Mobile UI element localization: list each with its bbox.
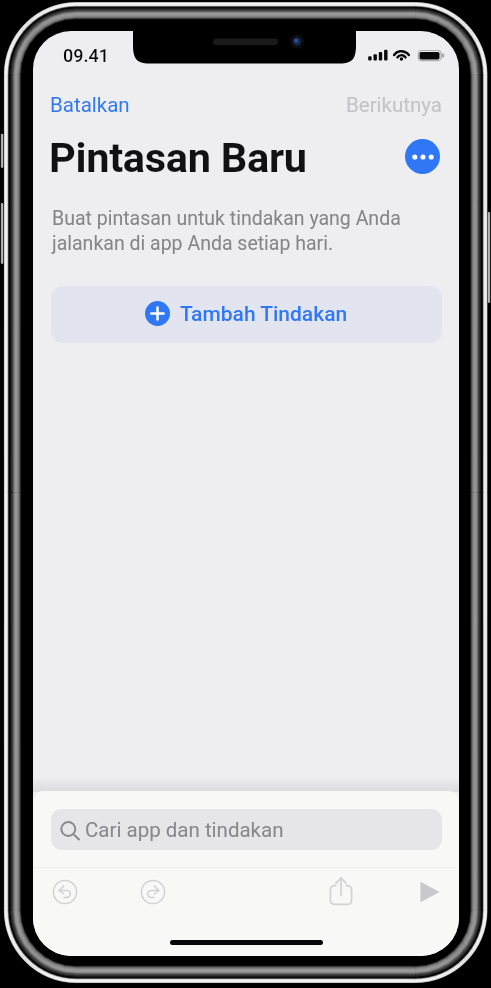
- button[interactable]: Share: [325, 879, 357, 911]
- button[interactable]: Cari app dan tindakan: [51, 809, 442, 850]
- staticText: Tambah Tindakan: [180, 302, 348, 327]
- button[interactable]: Tambah Tindakan: [51, 286, 442, 343]
- staticText: Cari app dan tindakan: [85, 818, 284, 842]
- staticText: Batalkan: [50, 93, 130, 117]
- staticText: Berikutnya: [346, 93, 442, 117]
- button[interactable]: Redo: [137, 876, 169, 908]
- button[interactable]: Berikutnya: [344, 91, 444, 119]
- staticText: Buat pintasan untuk tindakan yang Anda j…: [52, 207, 401, 255]
- other: Status icons: [33, 31, 458, 71]
- button[interactable]: Run: [414, 876, 446, 908]
- staticText: Pintasan Baru: [49, 133, 307, 182]
- button[interactable]: Undo: [49, 876, 81, 908]
- staticText: 09.41: [63, 45, 109, 66]
- button[interactable]: More options: [405, 139, 440, 174]
- button[interactable]: Batalkan: [48, 91, 132, 119]
